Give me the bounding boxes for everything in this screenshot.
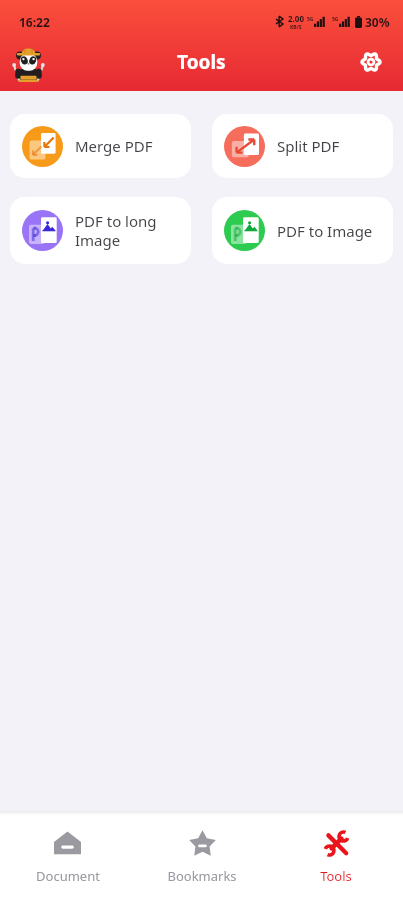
button[interactable]: PDF to long Image: [10, 197, 191, 264]
staticText: PDF to long Image: [75, 211, 157, 250]
button[interactable]: PDF to Image: [212, 197, 393, 264]
staticText: PDF to Image: [277, 221, 373, 241]
button[interactable]: Tools: [269, 828, 403, 887]
staticText: KB/S: [290, 24, 302, 31]
staticText: 5G: [332, 16, 339, 23]
button[interactable]: Bookmarks: [135, 828, 269, 887]
button[interactable]: Split PDF: [212, 114, 393, 178]
staticText: 16:22: [19, 14, 50, 30]
button[interactable]: Settings: [351, 43, 391, 81]
staticText: 2.00: [288, 13, 304, 24]
button[interactable]: Merge PDF: [10, 114, 191, 178]
staticText: Bookmarks: [167, 867, 237, 885]
staticText: Merge PDF: [75, 136, 153, 156]
staticText: Tools: [177, 49, 226, 75]
staticText: 5G: [307, 16, 314, 23]
staticText: Document: [36, 867, 100, 885]
button[interactable]: App logo: [11, 46, 46, 84]
staticText: Split PDF: [277, 136, 340, 156]
staticText: Tools: [320, 867, 352, 885]
staticText: 30%: [365, 14, 390, 30]
button[interactable]: Document: [0, 828, 135, 887]
